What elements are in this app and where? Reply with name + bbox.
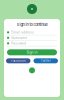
staticText: Email address [11, 31, 34, 34]
staticText: Twitter [41, 59, 51, 62]
button[interactable]: Facebook [6, 58, 30, 63]
staticText: Sign in [26, 50, 37, 54]
staticText: Facebook [11, 59, 25, 62]
staticText: Username [11, 36, 27, 40]
staticText: Password [11, 42, 26, 45]
button[interactable]: Sign in [7, 49, 57, 55]
staticText: Sign in to continue [16, 22, 47, 27]
button[interactable]: Twitter [33, 58, 58, 63]
